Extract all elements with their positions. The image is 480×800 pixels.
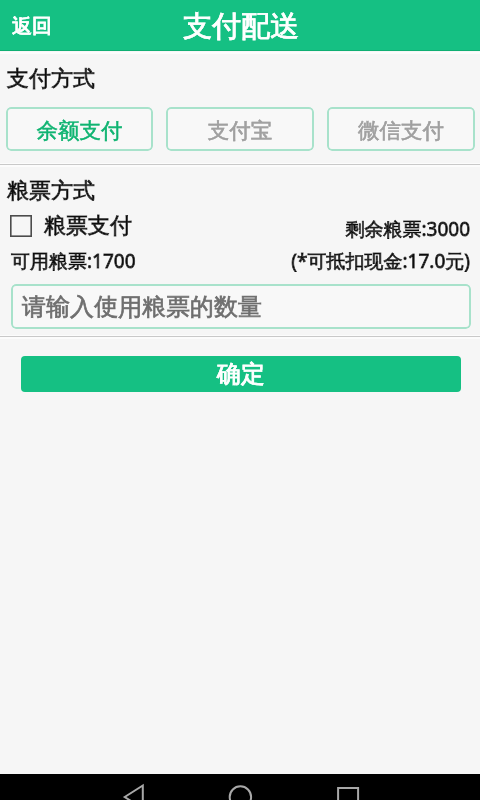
button[interactable]: Back xyxy=(104,774,164,800)
staticText: 粮票支付 xyxy=(44,212,144,240)
staticText: 支付配送 xyxy=(176,8,306,45)
staticText: 支付方式 xyxy=(7,65,127,93)
staticText: 支付宝 xyxy=(166,117,314,144)
staticText: (*可抵扣现金:17.0元) xyxy=(0,248,470,274)
staticText: 余额支付 xyxy=(6,117,153,144)
staticText: 粮票支付 xyxy=(44,212,144,240)
staticText: 微信支付 xyxy=(327,117,475,144)
staticText: 粮票方式 xyxy=(7,177,127,205)
staticText: 微信支付 xyxy=(327,117,475,144)
staticText: 请输入使用粮票的数量 xyxy=(22,292,282,322)
button[interactable]: 确定 xyxy=(21,356,461,392)
staticText: 剩余粮票:3000 xyxy=(0,216,470,242)
button[interactable]: 请输入使用粮票的数量 xyxy=(11,284,471,329)
button[interactable]: 支付宝 xyxy=(166,107,314,151)
button[interactable]: 粮票支付 xyxy=(0,212,144,240)
staticText: 粮票方式 xyxy=(7,177,127,205)
staticText: 可用粮票:1700 xyxy=(11,248,151,274)
staticText: 支付宝 xyxy=(166,117,314,144)
button[interactable]: 余额支付 xyxy=(6,107,153,151)
staticText: 支付方式 xyxy=(7,65,127,93)
button[interactable]: 微信支付 xyxy=(327,107,475,151)
button[interactable]: Recent apps xyxy=(328,774,388,800)
staticText: 返回 xyxy=(12,14,468,39)
staticText: (*可抵扣现金:17.0元) xyxy=(0,248,470,274)
staticText: 请输入使用粮票的数量 xyxy=(22,292,282,322)
staticText: 余额支付 xyxy=(6,117,153,144)
button[interactable]: 返回 xyxy=(0,1,480,50)
staticText: 支付配送 xyxy=(176,8,306,45)
staticText: 确定 xyxy=(206,359,276,389)
staticText: 返回 xyxy=(12,14,468,39)
button[interactable]: Home xyxy=(210,774,270,800)
staticText: 可用粮票:1700 xyxy=(11,248,151,274)
staticText: 确定 xyxy=(206,359,276,389)
staticText: 剩余粮票:3000 xyxy=(0,216,470,242)
